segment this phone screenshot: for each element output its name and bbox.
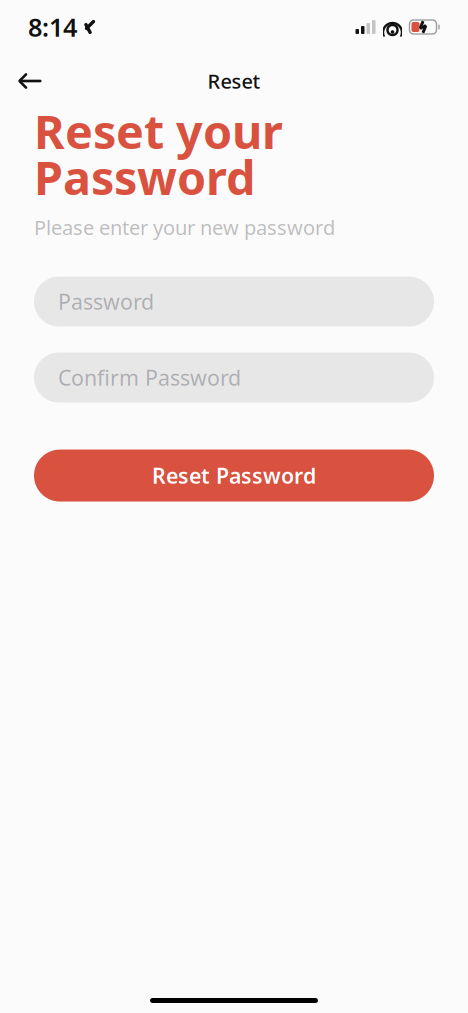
button[interactable]: Confirm Password xyxy=(34,353,434,403)
staticText: Password xyxy=(34,146,255,208)
button[interactable]: Password xyxy=(34,277,434,327)
button[interactable]: Back xyxy=(8,59,52,103)
staticText: Reset Password xyxy=(152,461,316,490)
staticText: Reset your xyxy=(34,100,283,162)
staticText: Confirm Password xyxy=(58,363,241,392)
staticText: Reset xyxy=(207,68,260,94)
staticText: Password xyxy=(58,287,154,316)
staticText: 8:14 xyxy=(28,10,77,44)
staticText: Please enter your new password xyxy=(34,214,335,241)
button[interactable]: Reset Password xyxy=(34,450,434,502)
